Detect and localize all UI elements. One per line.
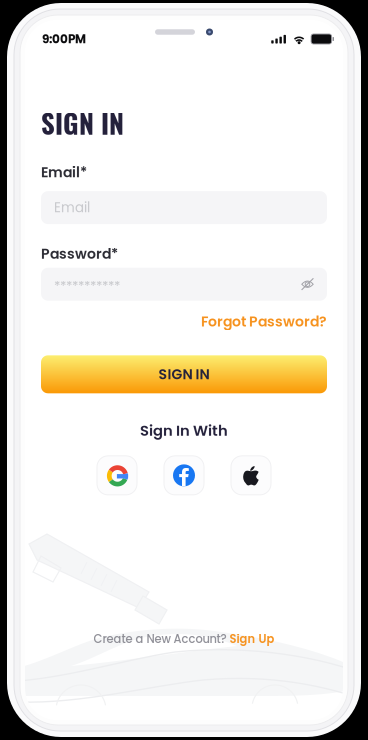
button[interactable]: Sign in with Apple: [231, 456, 271, 495]
button[interactable]: Sign Up: [229, 631, 274, 647]
staticText: Sign Up: [229, 631, 274, 647]
staticText: SIGN IN: [158, 364, 209, 384]
staticText: ***********: [54, 277, 120, 296]
button[interactable]: Sign in with Facebook: [164, 456, 204, 495]
button[interactable]: Email: [41, 191, 327, 224]
button[interactable]: Forgot Password?: [201, 312, 327, 331]
staticText: Email*: [41, 162, 87, 182]
button[interactable]: ***********: [41, 268, 327, 301]
staticText: Sign In With: [140, 420, 228, 441]
staticText: 9:00PM: [42, 31, 86, 47]
button[interactable]: Sign in with Google: [97, 456, 137, 495]
staticText: Forgot Password?: [201, 312, 327, 331]
staticText: SIGN IN: [41, 103, 124, 142]
staticText: Password*: [41, 244, 118, 264]
staticText: Create a New Account?: [93, 631, 229, 647]
staticText: Email: [54, 198, 90, 217]
button[interactable]: SIGN IN: [41, 355, 327, 393]
